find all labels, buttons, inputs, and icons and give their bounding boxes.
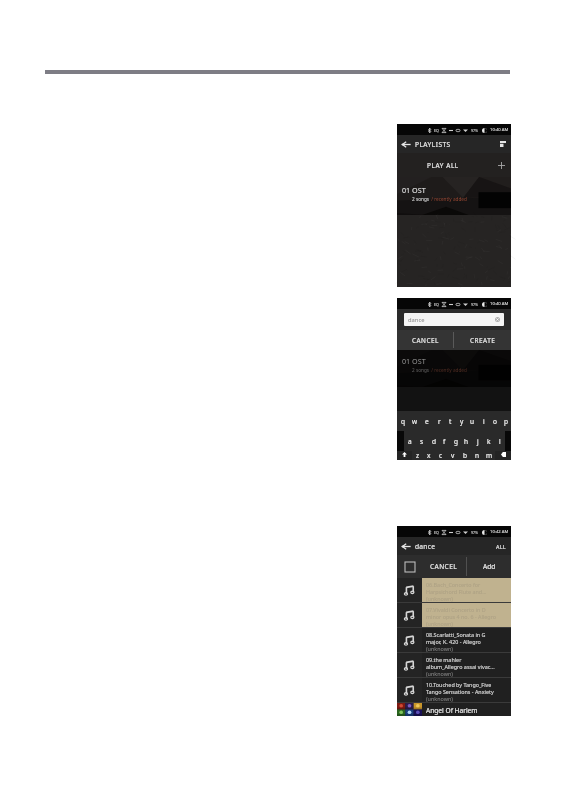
staticText: y xyxy=(460,417,464,426)
staticText: Add xyxy=(483,562,496,571)
button[interactable]: s xyxy=(416,431,428,451)
button[interactable]: y xyxy=(456,411,467,431)
button[interactable]: t xyxy=(445,411,456,431)
staticText: major, K. 420 - Allegro xyxy=(426,638,481,645)
button[interactable]: 10.Touched by Tango_Five xyxy=(397,678,511,702)
staticText: n xyxy=(475,451,480,460)
button[interactable]: Backspace xyxy=(495,451,511,460)
button[interactable]: Shift xyxy=(397,451,412,460)
staticText: CANCEL xyxy=(430,562,458,571)
staticText: CANCEL xyxy=(412,336,439,345)
button[interactable]: 09.the mahler xyxy=(397,653,511,677)
staticText: z xyxy=(416,451,420,460)
staticText: 08.Scarlatti_Sonata in G xyxy=(426,631,486,638)
staticText: CREATE xyxy=(470,336,496,345)
staticText: f xyxy=(443,437,446,446)
button[interactable]: Angel Of Harlem xyxy=(397,703,511,716)
button[interactable]: d xyxy=(428,431,439,451)
button[interactable]: b xyxy=(459,451,471,460)
staticText: (unknown) xyxy=(426,595,453,602)
button[interactable]: CANCEL xyxy=(397,330,453,350)
button[interactable]: 08.Scarlatti_Sonata in G xyxy=(397,628,511,652)
staticText: 09.the mahler xyxy=(426,656,462,663)
button[interactable]: o xyxy=(489,411,500,431)
staticText: minor opus 4 no. 6 - Allegro xyxy=(426,613,497,620)
staticText: PLAYLISTS xyxy=(415,140,451,149)
button[interactable]: ALL xyxy=(495,543,507,550)
staticText: EQ xyxy=(434,530,439,535)
staticText: v xyxy=(451,451,455,460)
button[interactable]: Back xyxy=(401,141,411,148)
button[interactable]: u xyxy=(467,411,478,431)
staticText: Tango Sensations - Anxiety xyxy=(426,688,494,695)
staticText: / recently added xyxy=(430,196,467,202)
staticText: r xyxy=(438,417,441,426)
staticText: / recently added xyxy=(430,367,467,373)
button[interactable]: e xyxy=(421,411,433,431)
staticText: s xyxy=(420,437,424,446)
button[interactable]: Back xyxy=(401,543,411,550)
button[interactable]: h xyxy=(461,431,472,451)
button[interactable]: m xyxy=(483,451,495,460)
button[interactable]: 07.Vivaldi Concerto in D xyxy=(397,603,511,627)
button[interactable]: CANCEL xyxy=(422,555,466,578)
button[interactable]: k xyxy=(483,431,494,451)
button[interactable]: q xyxy=(397,411,409,431)
button[interactable]: a xyxy=(404,431,416,451)
staticText: q xyxy=(401,417,405,426)
staticText: 07.Vivaldi Concerto in D xyxy=(426,606,486,613)
staticText: j xyxy=(477,437,479,446)
staticText: dance xyxy=(408,316,425,324)
staticText: (unknown) xyxy=(426,670,453,677)
button[interactable]: f xyxy=(439,431,450,451)
staticText: EQ xyxy=(434,302,439,307)
staticText: 2 songs xyxy=(412,196,430,202)
button[interactable]: v xyxy=(447,451,459,460)
staticText: EQ xyxy=(434,128,439,133)
button[interactable]: PLAY ALL xyxy=(397,153,511,177)
button[interactable]: Add xyxy=(467,555,511,578)
staticText: Angel Of Harlem xyxy=(426,706,478,715)
button[interactable]: n xyxy=(471,451,483,460)
button[interactable]: 01 OST xyxy=(397,177,511,215)
staticText: i xyxy=(483,417,485,426)
staticText: m xyxy=(486,451,493,460)
staticText: 10.Touched by Tango_Five xyxy=(426,681,492,688)
button[interactable]: i xyxy=(478,411,489,431)
button[interactable]: j xyxy=(472,431,483,451)
staticText: h xyxy=(464,437,469,446)
button[interactable]: p xyxy=(500,411,511,431)
staticText: b xyxy=(463,451,467,460)
button[interactable]: c xyxy=(435,451,447,460)
button[interactable]: CREATE xyxy=(454,330,511,350)
staticText: 10:42 AM xyxy=(490,529,509,535)
button[interactable]: w xyxy=(409,411,421,431)
button[interactable]: l xyxy=(494,431,505,451)
staticText: k xyxy=(487,437,491,446)
button[interactable]: More options xyxy=(499,140,507,148)
button[interactable]: dance xyxy=(404,313,504,326)
staticText: 2 songs xyxy=(412,367,430,373)
staticText: (unknown) xyxy=(426,695,453,702)
button[interactable]: z xyxy=(412,451,423,460)
staticText: dance xyxy=(415,542,436,551)
staticText: o xyxy=(493,417,497,426)
button[interactable]: g xyxy=(450,431,461,451)
button[interactable]: x xyxy=(423,451,435,460)
button[interactable]: r xyxy=(433,411,445,431)
staticText: t xyxy=(449,417,452,426)
button[interactable]: Select all xyxy=(397,555,422,578)
staticText: a xyxy=(408,437,412,446)
staticText: (unknown) xyxy=(426,620,453,627)
staticText: 97% xyxy=(471,128,479,133)
staticText: Harpsichord Flute and... xyxy=(426,588,487,595)
staticText: c xyxy=(439,451,443,460)
staticText: 01 OST xyxy=(402,185,426,195)
staticText: d xyxy=(432,437,436,446)
staticText: album_Allegro assai vivac... xyxy=(426,663,495,670)
staticText: g xyxy=(454,437,458,446)
staticText: (unknown) xyxy=(426,645,453,652)
staticText: e xyxy=(425,417,429,426)
staticText: 10:40 AM xyxy=(490,301,509,307)
button[interactable]: 06.Bach_Concerto for xyxy=(397,578,511,602)
